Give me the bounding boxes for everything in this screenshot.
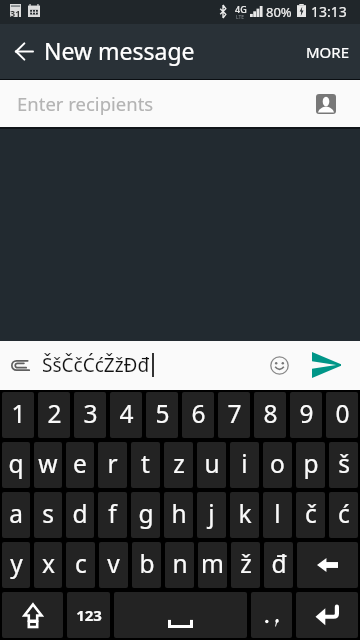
button[interactable]: a — [2, 492, 30, 538]
staticText: 80% — [266, 3, 292, 21]
button[interactable]: u — [197, 442, 226, 488]
staticText: ć — [338, 497, 350, 530]
staticText: f — [108, 497, 117, 530]
staticText: LTE — [236, 14, 245, 21]
staticText: e — [73, 447, 87, 480]
staticText: 0 — [335, 397, 350, 430]
staticText: 5 — [155, 397, 170, 430]
button[interactable]: m — [198, 542, 227, 588]
button[interactable]: Emoji — [258, 341, 300, 389]
staticText: š — [338, 447, 350, 480]
button[interactable]: s — [34, 492, 62, 538]
button[interactable]: Send — [300, 341, 352, 389]
staticText: 1 — [11, 397, 26, 430]
button[interactable]: e — [66, 442, 94, 488]
button[interactable]: č — [296, 492, 325, 538]
staticText: g — [138, 497, 154, 530]
button[interactable]: y — [2, 542, 30, 588]
button[interactable]: 3 — [74, 392, 106, 438]
button[interactable]: shift — [2, 592, 63, 638]
staticText: q — [8, 447, 24, 480]
staticText: č — [305, 497, 317, 530]
staticText: 13:13 — [311, 2, 347, 21]
staticText: 4G — [235, 3, 247, 15]
button[interactable]: ć — [329, 492, 358, 538]
button[interactable]: t — [131, 442, 160, 488]
staticText: 123 — [76, 605, 102, 625]
staticText: 8 — [263, 397, 278, 430]
button[interactable]: h — [164, 492, 193, 538]
button[interactable]: j — [197, 492, 226, 538]
staticText: 2 — [47, 397, 62, 430]
staticText: x — [42, 547, 55, 580]
staticText: z — [173, 447, 185, 480]
button[interactable]: 6 — [182, 392, 214, 438]
staticText: d — [72, 497, 88, 530]
staticText: r — [107, 447, 118, 480]
button[interactable]: 1 — [2, 392, 34, 438]
button[interactable]: z — [164, 442, 193, 488]
staticText: p — [303, 447, 319, 480]
staticText: l — [274, 497, 281, 530]
button[interactable]: x — [34, 542, 62, 588]
button[interactable]: 8 — [254, 392, 286, 438]
staticText: j — [208, 497, 215, 530]
button[interactable]: Enter recipients — [0, 80, 360, 127]
staticText: đ — [271, 547, 287, 580]
button[interactable]: enter — [296, 592, 358, 638]
button[interactable]: 123 — [67, 592, 110, 638]
staticText: y — [10, 547, 23, 580]
button[interactable]: 9 — [290, 392, 322, 438]
button[interactable]: l — [263, 492, 292, 538]
staticText: s — [42, 497, 54, 530]
staticText: 7 — [227, 397, 242, 430]
button[interactable]: 7 — [218, 392, 250, 438]
staticText: i — [241, 447, 248, 480]
button[interactable]: punct — [251, 592, 292, 638]
button[interactable]: o — [263, 442, 292, 488]
staticText: a — [9, 497, 23, 530]
staticText: 31 — [10, 7, 21, 19]
staticText: c — [75, 547, 87, 580]
button[interactable]: space — [114, 592, 247, 638]
button[interactable]: Attach — [0, 341, 40, 389]
button[interactable]: š — [329, 442, 358, 488]
button[interactable]: k — [230, 492, 259, 538]
button[interactable]: n — [165, 542, 194, 588]
button[interactable]: p — [296, 442, 325, 488]
button[interactable]: Back — [0, 24, 48, 79]
button[interactable]: back — [297, 542, 358, 588]
button[interactable]: Pick contact — [304, 80, 348, 127]
button[interactable]: đ — [264, 542, 293, 588]
staticText: 3 — [83, 397, 98, 430]
button[interactable]: v — [99, 542, 128, 588]
staticText: 6 — [191, 397, 206, 430]
button[interactable]: 2 — [38, 392, 70, 438]
staticText: m — [201, 547, 224, 580]
staticText: t — [141, 447, 150, 480]
staticText: u — [204, 447, 220, 480]
button[interactable]: ž — [231, 542, 260, 588]
button[interactable]: MORE — [294, 24, 360, 79]
button[interactable]: 5 — [146, 392, 178, 438]
button[interactable]: r — [98, 442, 127, 488]
button[interactable]: i — [230, 442, 259, 488]
button[interactable]: 4 — [110, 392, 142, 438]
staticText: Enter recipients — [17, 91, 154, 116]
button[interactable]: g — [131, 492, 160, 538]
staticText: 4 — [119, 397, 134, 430]
staticText: v — [107, 547, 120, 580]
button[interactable]: c — [66, 542, 95, 588]
button[interactable]: b — [132, 542, 161, 588]
button[interactable]: f — [98, 492, 127, 538]
staticText: New message — [44, 35, 195, 66]
button[interactable]: w — [34, 442, 62, 488]
staticText: w — [38, 447, 58, 480]
staticText: 9 — [299, 397, 314, 430]
staticText: o — [270, 447, 285, 480]
staticText: n — [172, 547, 188, 580]
button[interactable]: 0 — [326, 392, 358, 438]
staticText: ž — [240, 547, 252, 580]
button[interactable]: d — [66, 492, 94, 538]
button[interactable]: q — [2, 442, 30, 488]
